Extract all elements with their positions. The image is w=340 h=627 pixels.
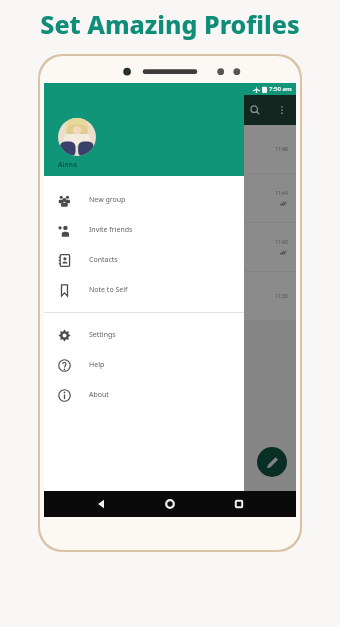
button[interactable]: About <box>44 380 244 410</box>
button[interactable]: 11:48 <box>44 125 296 173</box>
button[interactable]: Search <box>246 101 264 119</box>
staticText: New group <box>89 195 126 205</box>
button[interactable]: Invite friends <box>44 215 244 245</box>
button[interactable]: New group <box>44 185 244 215</box>
button[interactable]: Contacts <box>44 245 244 275</box>
staticText: Contacts <box>89 255 118 265</box>
button[interactable]: More options <box>273 101 291 119</box>
button[interactable]: Home <box>158 492 182 516</box>
staticText: 11:48 <box>275 146 288 153</box>
staticText: Invite friends <box>89 225 133 235</box>
button[interactable]: Settings <box>44 320 244 350</box>
button[interactable]: New chat <box>257 447 287 477</box>
button[interactable]: 11:30 <box>44 272 296 320</box>
button[interactable]: 11:44 <box>44 174 296 222</box>
staticText: About <box>89 390 109 400</box>
staticText: Set Amazing Profiles <box>40 7 300 41</box>
staticText: Alena <box>58 160 77 170</box>
staticText: 11:30 <box>275 293 288 300</box>
staticText: 11:40 <box>275 239 288 246</box>
button[interactable]: Alena <box>44 83 244 176</box>
staticText: 7:50 am <box>269 85 292 93</box>
staticText: 11:44 <box>275 190 288 197</box>
button[interactable]: Recent apps <box>227 492 251 516</box>
button[interactable]: 11:40 <box>44 223 296 271</box>
button[interactable]: Back <box>89 492 113 516</box>
staticText: Settings <box>89 330 116 340</box>
staticText: Note to Self <box>89 285 128 295</box>
staticText: Help <box>89 360 105 370</box>
button[interactable]: Note to Self <box>44 275 244 305</box>
button[interactable]: Help <box>44 350 244 380</box>
